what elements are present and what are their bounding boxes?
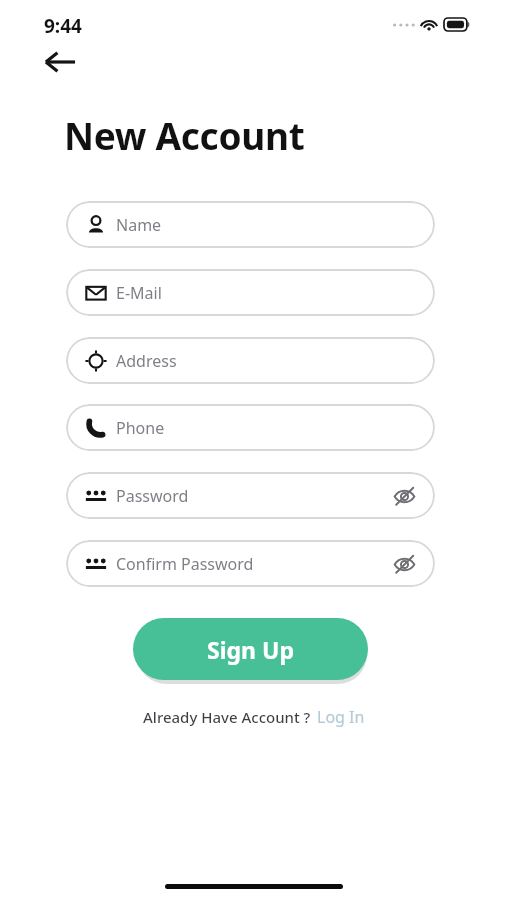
- button[interactable]: Address: [66, 337, 435, 384]
- staticText: New Account: [64, 110, 305, 160]
- staticText: Confirm Password: [116, 553, 254, 575]
- button[interactable]: Sign Up: [133, 618, 368, 680]
- staticText: Sign Up: [207, 634, 294, 665]
- staticText: Password: [116, 485, 189, 507]
- button[interactable]: E-Mail: [66, 269, 435, 316]
- staticText: Name: [116, 214, 162, 236]
- button[interactable]: Back: [36, 42, 84, 82]
- staticText: E-Mail: [116, 282, 162, 304]
- staticText: Phone: [116, 417, 165, 439]
- button[interactable]: Toggle password visibility: [391, 483, 417, 509]
- staticText: Log In: [317, 706, 365, 728]
- staticText: 9:44: [44, 13, 82, 39]
- button[interactable]: Name: [66, 201, 435, 248]
- button[interactable]: Password: [66, 472, 435, 519]
- staticText: Already Have Account ?: [143, 707, 311, 727]
- button[interactable]: Toggle password visibility: [391, 551, 417, 577]
- staticText: Address: [116, 350, 177, 372]
- button[interactable]: Confirm Password: [66, 540, 435, 587]
- button[interactable]: Phone: [66, 404, 435, 451]
- button[interactable]: Log In: [317, 706, 365, 728]
